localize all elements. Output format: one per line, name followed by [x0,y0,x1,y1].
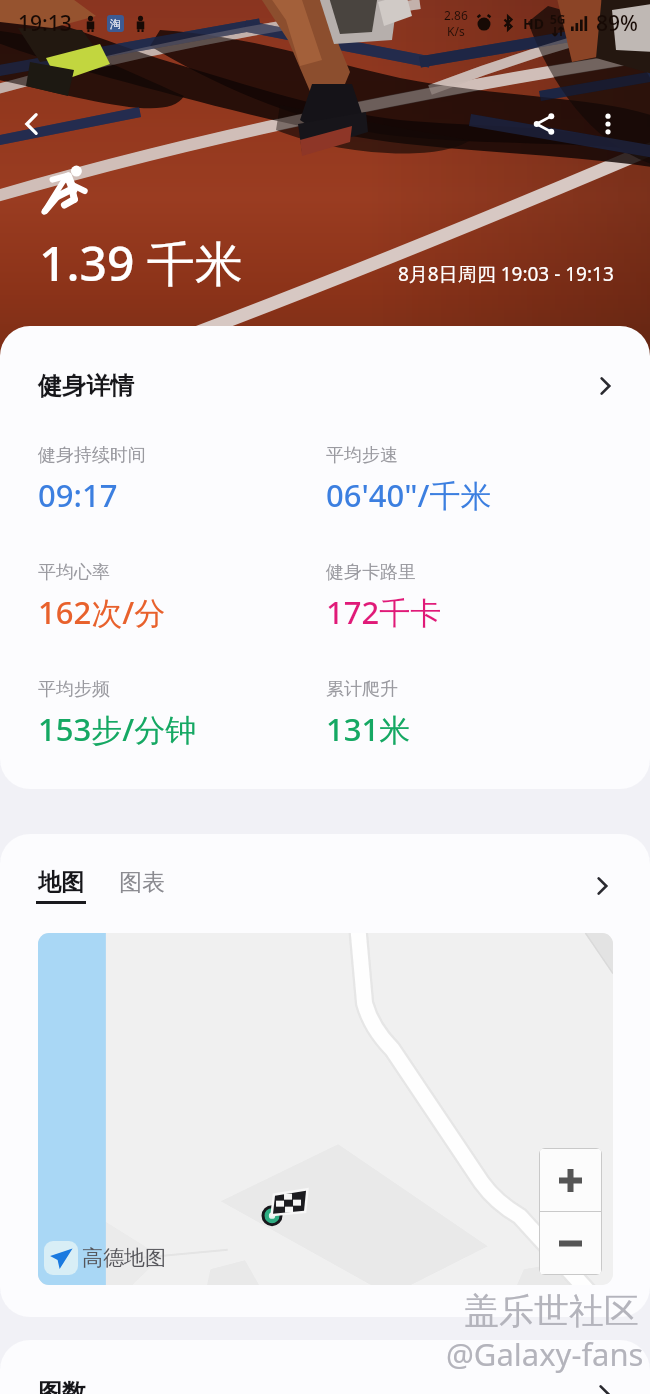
staticText: 06'40"/千米 [326,474,492,516]
button[interactable]: 高德地图 [38,933,613,1285]
button[interactable]: 图数 [0,1340,650,1394]
staticText: K/s [447,23,465,39]
staticText: 131米 [326,708,411,750]
button[interactable]: 图表 [119,868,165,897]
staticText: 89% [596,9,638,38]
button[interactable]: Share [512,92,576,156]
staticText: @Galaxy-fans [446,1333,644,1375]
staticText: 平均心率 [38,561,110,584]
button[interactable]: Open map details [580,864,624,908]
button[interactable]: More options [576,92,640,156]
staticText: 09:17 [38,474,118,516]
staticText: 162次/分 [38,591,166,633]
staticText: 累计爬升 [326,678,398,701]
staticText: 19:13 [18,9,72,38]
staticText: 2.86 [444,7,468,23]
button[interactable]: Back [0,92,64,156]
staticText: 8月8日周四 19:03 - 19:13 [398,261,614,287]
button[interactable]: 健身详情 [0,326,650,446]
staticText: 平均步速 [326,444,398,467]
button[interactable]: Zoom out [540,1212,601,1274]
staticText: 盖乐世社区 [464,1289,639,1333]
staticText: 健身详情 [38,371,134,401]
staticText: 高德地图 [82,1245,166,1271]
staticText: 图表 [119,868,165,897]
staticText: 1.39 千米 [39,230,243,296]
staticText: 172千卡 [326,591,442,633]
staticText: 淘 [110,17,121,31]
staticText: 健身持续时间 [38,444,146,467]
staticText: HD [523,14,544,33]
staticText: 图数 [38,1378,86,1394]
staticText: 平均步频 [38,678,110,701]
staticText: 地图 [38,868,84,897]
staticText: 5G [550,11,566,27]
staticText: 153步/分钟 [38,708,197,750]
staticText: 健身卡路里 [326,561,416,584]
button[interactable]: 地图 [36,868,86,904]
button[interactable]: Zoom in [540,1149,601,1211]
